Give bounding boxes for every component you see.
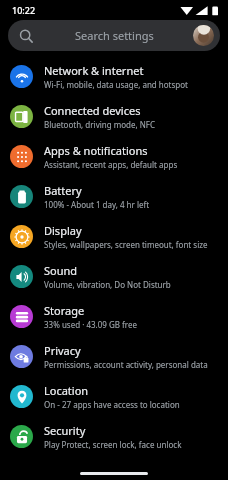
- staticText: 10:22: [12, 4, 36, 16]
- staticText: 33% used · 43.09 GB free: [44, 319, 137, 330]
- button[interactable]: Privacy: [0, 336, 228, 376]
- button[interactable]: Location: [0, 376, 228, 416]
- staticText: Volume, vibration, Do Not Disturb: [44, 279, 171, 290]
- other: Search: [19, 29, 33, 43]
- staticText: Permissions, account activity, personal …: [44, 359, 208, 370]
- button[interactable]: Battery: [0, 176, 228, 216]
- staticText: Sound: [44, 263, 78, 278]
- button[interactable]: Network & internet: [0, 56, 228, 96]
- staticText: Wi-Fi, mobile, data usage, and hotspot: [44, 79, 188, 90]
- staticText: Search settings: [75, 28, 154, 43]
- staticText: Apps & notifications: [44, 143, 148, 158]
- button[interactable]: Display: [0, 216, 228, 256]
- staticText: Privacy: [44, 343, 81, 358]
- button[interactable]: Account: [193, 25, 214, 46]
- staticText: Assistant, recent apps, default apps: [44, 159, 178, 170]
- staticText: Network & internet: [44, 63, 144, 78]
- staticText: Connected devices: [44, 103, 141, 118]
- staticText: Display: [44, 223, 82, 238]
- staticText: Styles, wallpapers, screen timeout, font…: [44, 239, 208, 250]
- button[interactable]: Connected devices: [0, 96, 228, 136]
- button[interactable]: Search: [8, 20, 220, 51]
- staticText: Play Protect, screen lock, face unlock: [44, 439, 182, 450]
- staticText: Location: [44, 383, 89, 398]
- button[interactable]: Security: [0, 416, 228, 456]
- staticText: Security: [44, 423, 86, 438]
- button[interactable]: Apps & notifications: [0, 136, 228, 176]
- staticText: Battery: [44, 183, 82, 198]
- button[interactable]: Sound: [0, 256, 228, 296]
- staticText: Bluetooth, driving mode, NFC: [44, 119, 155, 130]
- staticText: Storage: [44, 303, 85, 318]
- staticText: On - 27 apps have access to location: [44, 399, 180, 410]
- staticText: 100% - About 1 day, 4 hr left: [44, 199, 150, 210]
- button[interactable]: Storage: [0, 296, 228, 336]
